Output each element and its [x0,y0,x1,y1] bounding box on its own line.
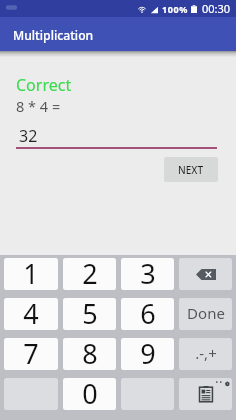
staticText: NEXT [178,163,204,177]
button[interactable]: 6 [121,298,174,330]
other: Change input method [179,378,232,410]
button[interactable]: 8 [63,338,116,370]
staticText: 8 [82,338,98,367]
button[interactable]: 4 [4,298,58,330]
staticText: Done [187,303,225,323]
staticText: Multiplication [13,27,94,44]
button[interactable]: .-,+ [179,338,232,370]
staticText: 5 [82,298,98,327]
staticText: 4 [23,298,39,327]
button[interactable]: 2 [63,258,116,290]
button[interactable]: NEXT [164,157,218,182]
button[interactable]: 9 [121,338,174,370]
staticText: 8 * 4 = [16,96,61,116]
staticText: 0 [82,378,98,407]
staticText: 00:30 [202,1,231,16]
staticText: .-,+ [195,343,217,363]
staticText: 6 [140,298,156,327]
button[interactable]: 7 [4,338,58,370]
staticText: 2 [82,258,98,287]
button[interactable]: 0 [63,378,116,410]
button[interactable]: Change input method [179,378,232,410]
staticText: 1 [23,258,39,287]
button[interactable]: Done [179,298,232,330]
staticText: 32 [19,125,38,147]
button[interactable]: Backspace [179,258,232,290]
staticText: 7 [23,338,39,367]
button[interactable]: 3 [121,258,174,290]
other: Backspace [196,269,216,280]
staticText: 9 [140,338,156,367]
button[interactable]: 5 [63,298,116,330]
staticText: Correct [16,74,72,96]
button[interactable]: 1 [4,258,58,290]
staticText: 3 [140,258,156,287]
staticText: 100% [162,3,188,15]
